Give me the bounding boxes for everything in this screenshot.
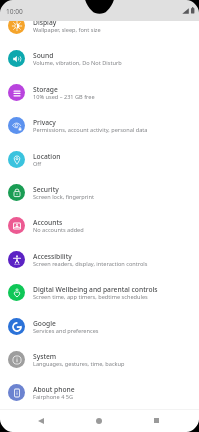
staticText: 10% used – 231 GB free <box>33 93 95 101</box>
button[interactable]: About phone <box>0 376 199 409</box>
button[interactable]: Recent apps <box>142 409 171 432</box>
staticText: No accounts added <box>33 226 84 234</box>
staticText: Languages, gestures, time, backup <box>33 360 125 368</box>
button[interactable]: Back <box>26 409 55 432</box>
staticText: Off <box>33 160 42 168</box>
staticText: Location <box>33 152 61 161</box>
staticText: Volume, vibration, Do Not Disturb <box>33 59 122 67</box>
staticText: Screen time, app timers, bedtime schedul… <box>33 293 148 301</box>
staticText: Display <box>33 18 57 27</box>
button[interactable]: Storage <box>0 76 199 109</box>
staticText: Sound <box>33 51 54 60</box>
staticText: Storage <box>33 85 58 94</box>
staticText: Security <box>33 185 59 194</box>
staticText: Wallpaper, sleep, font size <box>33 26 101 34</box>
staticText: Services and preferences <box>33 327 99 335</box>
staticText: Privacy <box>33 118 56 127</box>
staticText: About phone <box>33 385 75 394</box>
staticText: Accounts <box>33 218 63 227</box>
staticText: 10:00 <box>6 7 23 16</box>
button[interactable]: Location <box>0 143 199 176</box>
staticText: Permissions, account activity, personal … <box>33 126 148 134</box>
button[interactable]: Home <box>84 409 113 432</box>
staticText: Screen readers, display, interaction con… <box>33 260 148 268</box>
button[interactable]: Sound <box>0 42 199 75</box>
button[interactable]: Accounts <box>0 209 199 242</box>
button[interactable]: Digital Wellbeing and parental controls <box>0 276 199 309</box>
button[interactable]: System <box>0 343 199 376</box>
button[interactable]: Security <box>0 176 199 209</box>
button[interactable]: Privacy <box>0 109 199 142</box>
staticText: Accessibility <box>33 252 72 261</box>
staticText: System <box>33 352 57 361</box>
staticText: Digital Wellbeing and parental controls <box>33 285 158 294</box>
staticText: Screen lock, fingerprint <box>33 193 95 201</box>
button[interactable]: Google <box>0 310 199 343</box>
staticText: Google <box>33 319 56 328</box>
button[interactable]: Accessibility <box>0 243 199 276</box>
button[interactable]: Display <box>0 9 199 42</box>
staticText: Fairphone 4 5G <box>33 393 74 401</box>
